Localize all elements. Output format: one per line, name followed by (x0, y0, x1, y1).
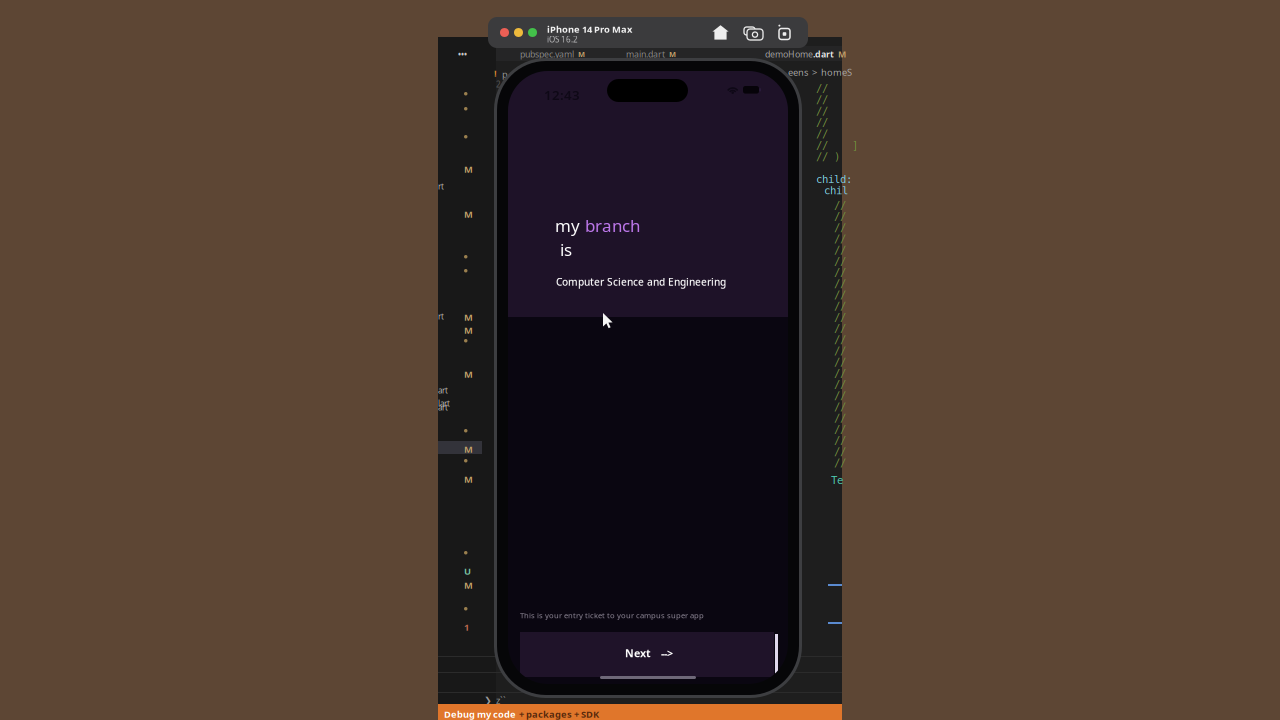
staticText: rt (438, 311, 444, 322)
staticText: iOS 16.2 (547, 34, 578, 45)
staticText: ❯ z`` (484, 694, 506, 706)
staticText: 2 (496, 79, 501, 90)
staticText: // (834, 345, 846, 357)
staticText: // (834, 389, 846, 402)
staticText: pubspec.yaml (520, 48, 574, 60)
staticText: main.dart (626, 48, 665, 60)
staticText: M (464, 473, 473, 485)
staticText: lart (438, 398, 450, 409)
staticText: // (834, 289, 846, 301)
staticText: child: (816, 173, 852, 185)
staticText: Computer Science and Engineering (556, 275, 726, 289)
staticText: M (578, 49, 585, 59)
staticText: Next (625, 646, 651, 660)
staticText: --> (661, 646, 673, 660)
staticText: // ] (816, 139, 858, 151)
staticText: // (834, 221, 846, 234)
staticText: ! (494, 67, 497, 79)
staticText: eens > homeS (788, 66, 852, 78)
staticText: art (438, 402, 448, 413)
staticText: // (834, 255, 846, 267)
staticText: Debug my code (444, 708, 516, 720)
staticText: iPhone 14 Pro Max (547, 23, 632, 35)
staticText: my (555, 214, 580, 237)
staticText: chil (824, 184, 848, 197)
staticText: M (464, 579, 473, 591)
staticText: M (834, 48, 846, 60)
staticText: // (816, 105, 828, 117)
staticText: // (834, 322, 846, 335)
staticText: art (438, 385, 448, 396)
staticText: // (834, 356, 846, 368)
staticText: 12:43 (544, 86, 580, 104)
staticText: // (834, 333, 846, 346)
staticText: // (834, 311, 846, 323)
staticText: p (502, 68, 508, 80)
staticText: M (669, 49, 676, 59)
staticText: // (834, 199, 846, 211)
staticText: rt (438, 181, 444, 192)
staticText: M (464, 311, 473, 323)
staticText: M (464, 368, 473, 380)
staticText: // (834, 434, 846, 447)
staticText: // (834, 300, 846, 312)
staticText: // (816, 128, 828, 140)
staticText: // (834, 457, 846, 469)
staticText: // (834, 401, 846, 413)
staticText: // (816, 82, 828, 94)
button[interactable]: Close (500, 28, 509, 37)
staticText: M (464, 324, 473, 336)
button[interactable]: Screenshot (744, 25, 764, 41)
staticText: .dart (813, 48, 834, 60)
staticText: M (464, 163, 473, 175)
staticText: branch (585, 214, 640, 237)
button[interactable]: Next (520, 632, 778, 677)
staticText: // (834, 445, 846, 458)
staticText: // (834, 367, 846, 379)
staticText: // (834, 266, 846, 279)
staticText: // (816, 116, 828, 129)
staticText: // (834, 233, 846, 245)
button[interactable]: Record screen (777, 24, 792, 41)
staticText: // ) (816, 150, 840, 163)
button[interactable]: Home (712, 24, 729, 41)
staticText: U (464, 565, 471, 577)
staticText: // (834, 423, 846, 435)
staticText: 1 (464, 621, 469, 633)
staticText: M (464, 443, 473, 455)
staticText: This is your entry ticket to your campus… (520, 610, 704, 620)
staticText: // (834, 378, 846, 391)
staticText: // (834, 244, 846, 256)
staticText: is (560, 238, 572, 261)
staticText: ••• (458, 49, 467, 60)
staticText: M (464, 208, 473, 220)
staticText: // (834, 210, 846, 223)
button[interactable]: Minimise (514, 28, 523, 37)
staticText: // (834, 412, 846, 424)
staticText: + packages + SDK (519, 708, 599, 720)
button[interactable]: Zoom (528, 28, 537, 37)
staticText: // (816, 93, 828, 106)
staticText: demoHome (765, 48, 813, 60)
staticText: Te (831, 474, 843, 486)
staticText: // (834, 277, 846, 290)
